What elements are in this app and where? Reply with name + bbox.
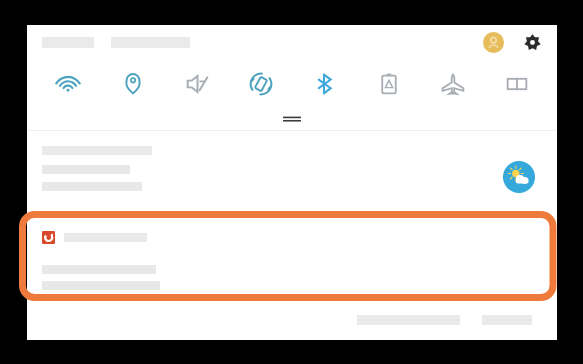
button[interactable]: wifi <box>35 60 100 108</box>
button[interactable]: bluetooth <box>293 60 357 108</box>
button[interactable]: Settings <box>523 33 542 52</box>
button[interactable]: clipboard <box>357 60 421 108</box>
button[interactable]: book <box>485 60 549 108</box>
button[interactable]: Expand <box>283 115 301 123</box>
button[interactable] <box>27 210 557 303</box>
button[interactable]: airplane <box>421 60 485 108</box>
button[interactable]: Weather <box>503 161 535 193</box>
button[interactable]: Account <box>483 32 504 53</box>
button[interactable]: Weather <box>27 131 557 210</box>
button[interactable]: location <box>100 60 165 108</box>
button[interactable]: rotate <box>229 60 293 108</box>
button[interactable]: mute <box>165 60 229 108</box>
